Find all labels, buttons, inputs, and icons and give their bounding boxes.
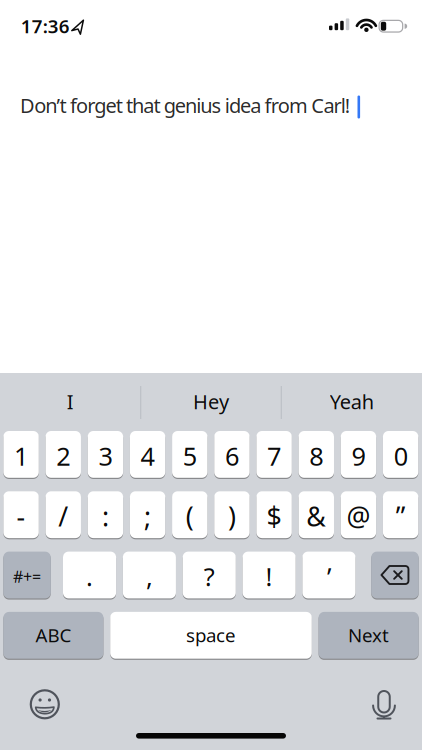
button[interactable]: 4	[130, 431, 165, 478]
staticText: 6	[225, 439, 239, 473]
staticText: ’	[327, 560, 331, 593]
staticText: !	[266, 560, 273, 593]
staticText: ,	[146, 560, 153, 593]
button[interactable]: :	[88, 491, 123, 538]
button[interactable]: 0	[383, 431, 418, 478]
staticText: 8	[309, 439, 323, 473]
staticText: .	[86, 560, 93, 593]
button[interactable]: #+=	[3, 552, 51, 598]
staticText: )	[228, 498, 236, 534]
staticText: (	[186, 498, 194, 534]
button[interactable]: -	[3, 491, 39, 538]
button[interactable]: 5	[172, 431, 207, 478]
staticText: /	[58, 498, 68, 534]
button[interactable]: Hey	[151, 378, 271, 424]
button[interactable]: (	[172, 491, 207, 538]
staticText: ?	[204, 560, 215, 593]
staticText: :	[102, 498, 109, 534]
button[interactable]: @	[341, 491, 376, 538]
button[interactable]: $	[256, 491, 292, 538]
staticText: 3	[98, 439, 112, 473]
staticText: 9	[351, 439, 365, 473]
staticText: 1	[14, 439, 28, 473]
staticText: Next	[348, 622, 389, 647]
staticText: ”	[396, 498, 406, 534]
staticText: I	[67, 388, 74, 415]
button[interactable]: ABC	[3, 612, 103, 659]
button[interactable]: I	[10, 378, 130, 424]
button[interactable]	[356, 677, 412, 733]
staticText: 7	[267, 439, 281, 473]
staticText: 0	[394, 439, 408, 473]
staticText: 5	[183, 439, 197, 473]
button[interactable]: 9	[341, 431, 376, 478]
staticText: Don’t forget that genius idea from Carl!	[20, 92, 350, 119]
button[interactable]: )	[214, 491, 250, 538]
button[interactable]: ?	[183, 552, 236, 598]
button[interactable]	[371, 552, 419, 598]
staticText: &	[306, 498, 326, 534]
button[interactable]: /	[46, 491, 81, 538]
button[interactable]: 6	[214, 431, 250, 478]
button[interactable]: ’	[302, 552, 355, 598]
staticText: ABC	[35, 622, 71, 647]
button[interactable]: ,	[123, 552, 176, 598]
staticText: 17:36	[21, 13, 70, 38]
button[interactable]: ”	[383, 491, 418, 538]
staticText: Yeah	[330, 388, 374, 415]
staticText: -	[17, 498, 26, 534]
staticText: @	[346, 498, 370, 534]
button[interactable]: ;	[130, 491, 165, 538]
button[interactable]: &	[299, 491, 334, 538]
button[interactable]: 7	[256, 431, 292, 478]
button[interactable]	[17, 676, 73, 732]
staticText: $	[267, 498, 282, 534]
button[interactable]: 1	[3, 431, 39, 478]
button[interactable]: 2	[46, 431, 81, 478]
staticText: Hey	[193, 388, 229, 415]
button[interactable]: 3	[88, 431, 123, 478]
staticText: 4	[141, 439, 155, 473]
button[interactable]: space	[110, 612, 312, 659]
button[interactable]: .	[63, 552, 116, 598]
button[interactable]: Next	[319, 612, 419, 659]
button[interactable]: Yeah	[292, 378, 412, 424]
staticText: 2	[56, 439, 70, 473]
staticText: ;	[144, 498, 151, 534]
staticText: space	[186, 622, 236, 647]
staticText: #+=	[13, 566, 41, 587]
button[interactable]: 8	[299, 431, 334, 478]
button[interactable]: !	[243, 552, 296, 598]
